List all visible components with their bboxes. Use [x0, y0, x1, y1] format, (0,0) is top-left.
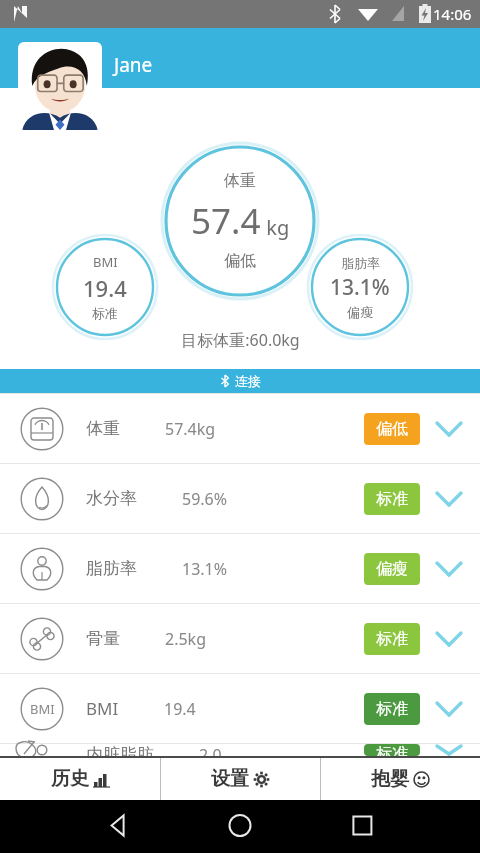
other: Expand 内脏脂肪	[434, 744, 464, 756]
staticText: 抱婴	[371, 767, 409, 791]
other: Expand 脂肪率	[434, 554, 464, 584]
staticText: 13.1%	[182, 558, 228, 580]
staticText: 标准	[92, 305, 118, 321]
staticText: 19.4	[83, 273, 127, 303]
button[interactable]: 抱婴	[321, 758, 480, 800]
staticText: 偏瘦	[347, 304, 373, 320]
button[interactable]: 体重	[0, 394, 480, 463]
staticText: 偏瘦	[376, 559, 408, 579]
staticText: 设置	[211, 767, 249, 791]
button[interactable]: 设置	[161, 758, 320, 800]
staticText: 目标体重:60.0kg	[181, 329, 300, 351]
staticText: BMI	[30, 700, 55, 718]
button[interactable]: 骨量	[0, 604, 480, 673]
staticText: kg	[261, 214, 290, 241]
staticText: 内脏脂肪	[86, 744, 154, 756]
other: Expand 体重	[434, 414, 464, 444]
staticText: 历史	[51, 767, 89, 791]
button[interactable]: BMI	[57, 239, 153, 335]
staticText: 13.1%	[330, 273, 390, 302]
staticText: 骨量	[86, 628, 120, 649]
staticText: 57.4kg	[165, 418, 216, 440]
staticText: 标准	[376, 699, 408, 719]
other: Expand 骨量	[434, 624, 464, 654]
button[interactable]: BMI	[0, 674, 480, 743]
staticText: 体重	[86, 418, 120, 439]
staticText: 19.4	[164, 698, 196, 720]
staticText: 偏低	[224, 251, 256, 271]
button[interactable]: 历史	[0, 758, 160, 800]
button[interactable]: 水分率	[0, 464, 480, 533]
staticText: 脂肪率	[86, 558, 137, 579]
staticText: 水分率	[86, 488, 137, 509]
other: Expand 水分率	[434, 484, 464, 514]
staticText: BMI	[93, 253, 118, 271]
staticText: 57.4	[191, 197, 261, 245]
staticText: BMI	[86, 697, 119, 720]
staticText: 标准	[376, 489, 408, 509]
other: Expand BMI	[434, 694, 464, 724]
button[interactable]: 连接	[0, 369, 480, 393]
staticText: 59.6%	[182, 488, 228, 510]
staticText: 标准	[376, 744, 408, 756]
staticText: 标准	[376, 629, 408, 649]
button[interactable]: 体重	[166, 147, 314, 295]
button[interactable]: 脂肪率	[0, 534, 480, 603]
button[interactable]: 脂肪率	[312, 239, 408, 335]
staticText: Jane	[114, 52, 153, 78]
staticText: 14:06	[433, 4, 472, 24]
staticText: 体重	[224, 171, 256, 191]
staticText: 偏低	[376, 419, 408, 439]
staticText: 脂肪率	[341, 255, 380, 271]
staticText: 2.5kg	[165, 628, 206, 650]
button[interactable]: 内脏脂肪	[0, 744, 480, 756]
staticText: 2.0	[199, 744, 222, 756]
button[interactable]: Profile avatar	[18, 42, 102, 130]
staticText: 连接	[235, 373, 261, 389]
